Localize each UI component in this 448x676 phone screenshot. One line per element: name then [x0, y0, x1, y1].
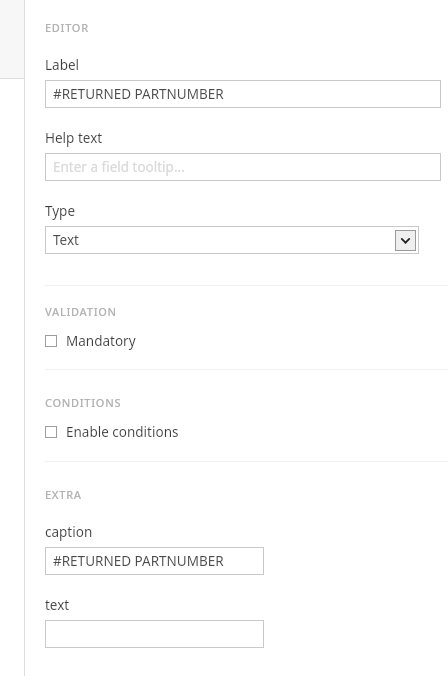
staticText: #RETURNED PARTNUMBER	[53, 85, 224, 103]
staticText: Text	[53, 231, 79, 249]
staticText: #RETURNED PARTNUMBER	[53, 552, 224, 570]
staticText: Help text	[45, 129, 103, 147]
button[interactable]: Enable conditions	[45, 423, 179, 441]
staticText: Enable conditions	[66, 423, 179, 441]
button[interactable]: Enter a field tooltip...	[45, 153, 441, 181]
staticText: Label	[45, 56, 80, 74]
staticText: caption	[45, 523, 93, 541]
staticText: Type	[45, 202, 76, 220]
staticText: Mandatory	[66, 332, 136, 350]
button[interactable]: #RETURNED PARTNUMBER	[45, 80, 441, 108]
staticText: EXTRA	[45, 487, 82, 502]
staticText: Enter a field tooltip...	[53, 158, 185, 176]
button[interactable]: Type	[45, 226, 419, 254]
button[interactable]: #RETURNED PARTNUMBER	[45, 547, 264, 575]
staticText: EDITOR	[45, 20, 89, 35]
button[interactable]: Mandatory	[45, 332, 136, 350]
button[interactable]	[45, 620, 264, 648]
staticText: text	[45, 596, 70, 614]
staticText: CONDITIONS	[45, 395, 122, 410]
staticText: VALIDATION	[45, 304, 117, 319]
